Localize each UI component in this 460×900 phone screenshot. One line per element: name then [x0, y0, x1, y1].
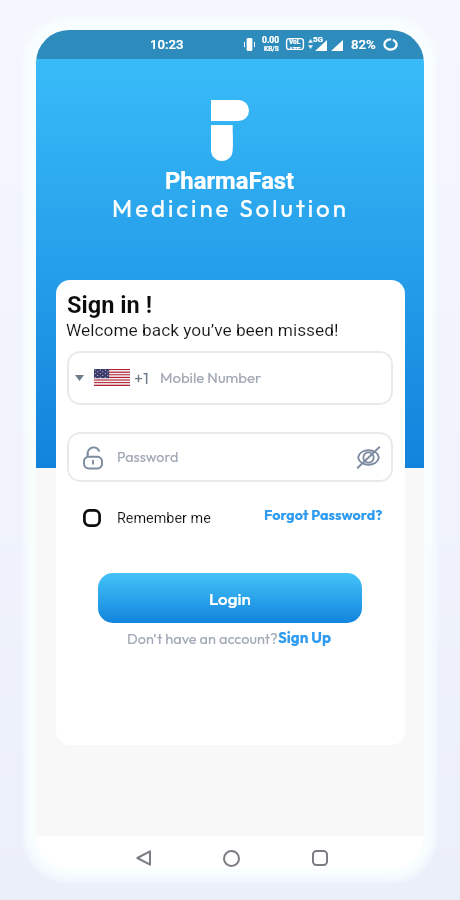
button[interactable]: Show password [357, 447, 380, 468]
button[interactable]: Recent apps [298, 836, 342, 869]
staticText: 0.00 [262, 35, 280, 45]
button[interactable]: Forgot Password? [264, 503, 383, 527]
button[interactable]: Password [67, 432, 393, 482]
button[interactable]: Home [209, 836, 253, 869]
staticText: Login [209, 588, 251, 609]
staticText: Remember me [117, 510, 211, 527]
staticText: PharmaFast [165, 167, 295, 195]
staticText: VoL [289, 38, 301, 46]
staticText: 10:23 [150, 37, 184, 52]
staticText: Mobile Number [160, 368, 262, 387]
staticText: Sign in ! [67, 291, 153, 319]
staticText: KB/S [264, 45, 279, 53]
staticText: +1 [134, 367, 149, 388]
staticText: Welcome back you’ve been missed! [66, 320, 339, 340]
button[interactable]: Sign Up [278, 628, 331, 647]
staticText: 5G [313, 35, 324, 44]
button[interactable]: +1 [67, 351, 393, 405]
staticText: Don't have an account? [127, 629, 278, 647]
button[interactable]: Back [121, 836, 165, 869]
staticText: Medicine Solution [112, 193, 349, 223]
button[interactable]: Login [98, 573, 362, 623]
staticText: 82% [351, 37, 376, 52]
staticText: Password [117, 448, 179, 466]
button[interactable]: Remember me [83, 503, 211, 533]
staticText: LTE [290, 46, 301, 50]
